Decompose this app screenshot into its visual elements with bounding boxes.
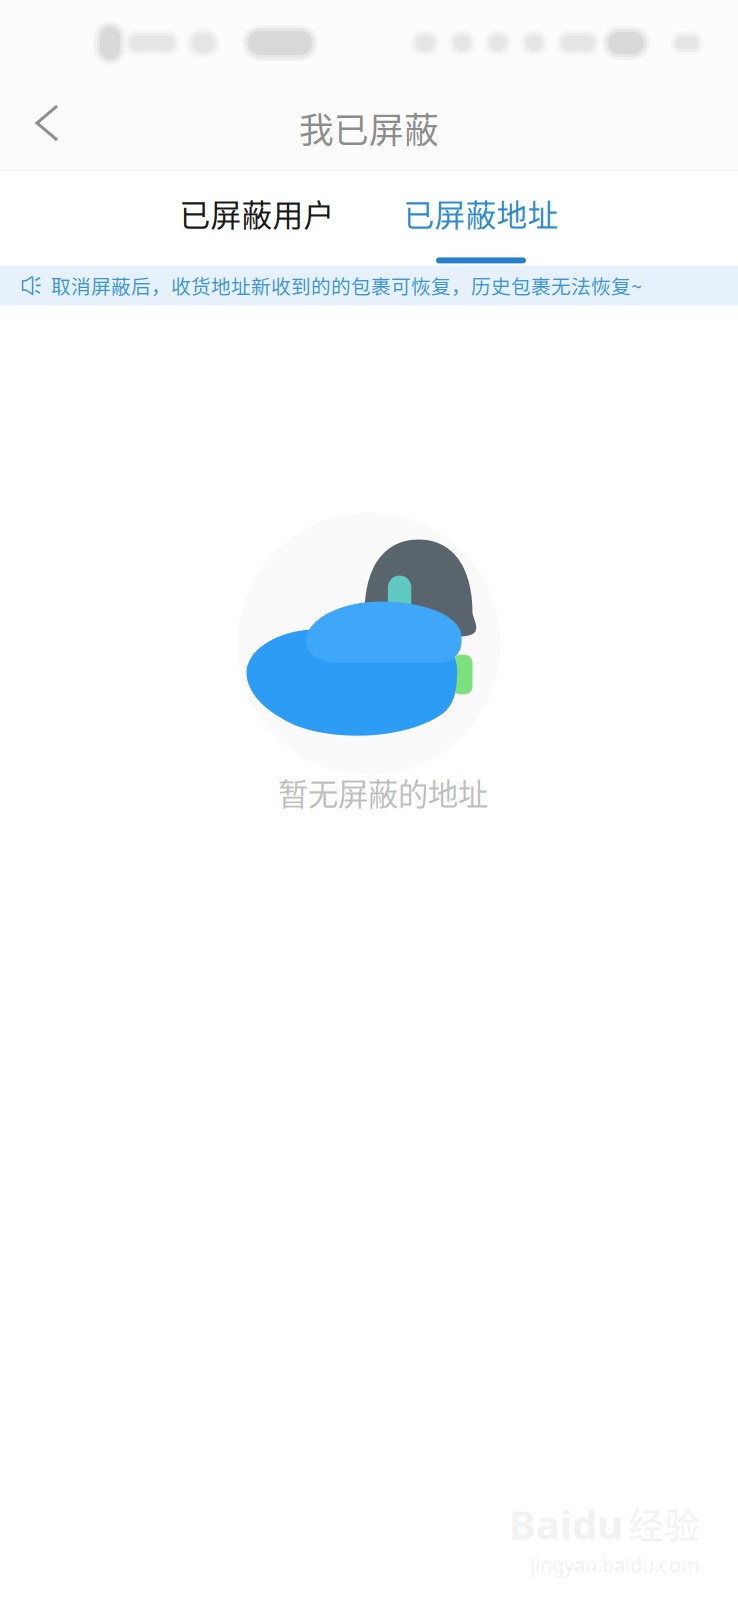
staticText: 取消屏蔽后，收货地址新收到的的包裹可恢复，历史包裹无法恢复~ <box>51 271 642 300</box>
button[interactable]: 返回 <box>0 86 88 170</box>
staticText: jingyan.baidu.com <box>530 1551 700 1578</box>
button[interactable]: 已屏蔽用户 <box>145 171 369 265</box>
staticText: 已屏蔽用户 <box>179 191 334 235</box>
staticText: 已屏蔽地址 <box>403 191 558 235</box>
staticText: Baidu <box>509 1497 623 1550</box>
staticText: 暂无屏蔽的地址 <box>278 770 488 814</box>
staticText: 我已屏蔽 <box>299 103 439 153</box>
staticText: 经验 <box>628 1498 700 1550</box>
button[interactable]: 已屏蔽地址 <box>369 171 593 265</box>
